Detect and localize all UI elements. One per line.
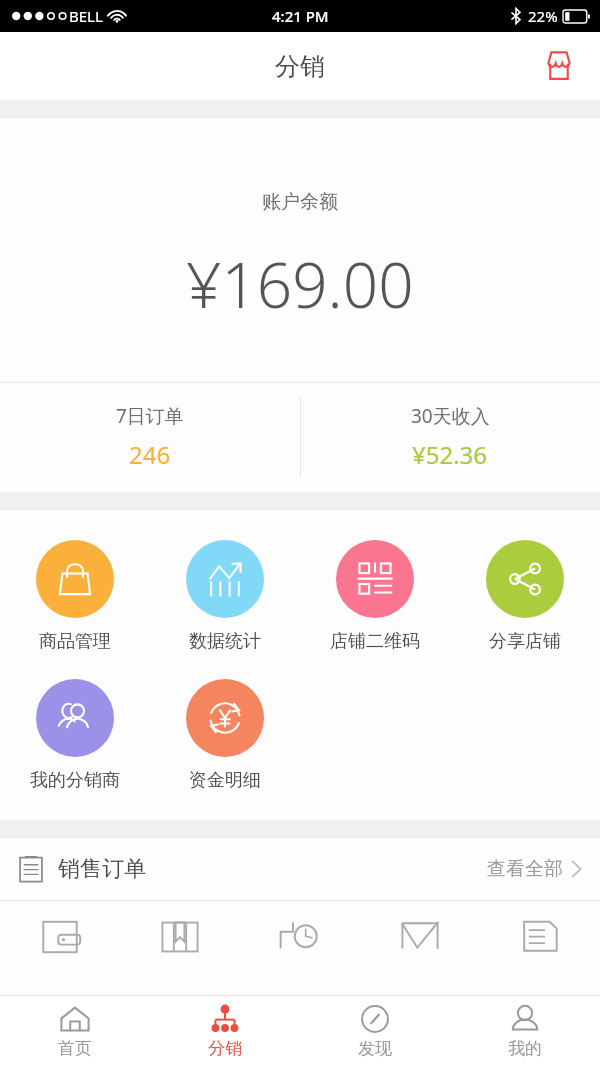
- staticText: 店铺二维码: [330, 630, 420, 653]
- staticText: 我的分销商: [30, 769, 120, 792]
- staticText: 30天收入: [411, 403, 490, 429]
- staticText: 销售订单: [58, 855, 146, 883]
- staticText: 首页: [58, 1038, 92, 1059]
- button[interactable]: 我的分销商: [0, 677, 150, 794]
- staticText: 4:21 PM: [272, 6, 329, 26]
- staticText: 查看全部: [487, 857, 563, 881]
- button[interactable]: 店铺二维码: [300, 538, 450, 655]
- button[interactable]: 资金明细: [150, 677, 300, 794]
- staticText: 22%: [528, 6, 558, 26]
- staticText: 资金明细: [189, 769, 261, 792]
- staticText: 246: [129, 438, 171, 471]
- button[interactable]: order status 3: [360, 918, 480, 956]
- button[interactable]: 数据统计: [150, 538, 300, 655]
- button[interactable]: 发现: [300, 996, 450, 1067]
- button[interactable]: 我的: [450, 996, 600, 1067]
- staticText: 分销: [208, 1038, 242, 1059]
- button[interactable]: 30天收入: [300, 382, 600, 492]
- staticText: BELL: [69, 6, 103, 26]
- staticText: 发现: [358, 1038, 392, 1059]
- staticText: 数据统计: [189, 630, 261, 653]
- button[interactable]: 分销: [150, 996, 300, 1067]
- staticText: 商品管理: [39, 630, 111, 653]
- button[interactable]: order status 1: [120, 918, 240, 956]
- staticText: 账户余额: [262, 190, 338, 214]
- staticText: 我的: [508, 1038, 542, 1059]
- staticText: ¥52.36: [412, 438, 488, 471]
- button[interactable]: 销售订单: [0, 838, 600, 900]
- button[interactable]: 首页: [0, 996, 150, 1067]
- button[interactable]: 7日订单: [0, 382, 300, 492]
- button[interactable]: 店铺: [536, 43, 582, 89]
- button[interactable]: order status 0: [0, 918, 120, 956]
- staticText: ¥169.00: [186, 242, 414, 326]
- button[interactable]: 分享店铺: [450, 538, 600, 655]
- button[interactable]: order status 4: [480, 918, 600, 956]
- staticText: 分销: [275, 51, 325, 82]
- staticText: 7日订单: [116, 403, 184, 429]
- staticText: 分享店铺: [489, 630, 561, 653]
- button[interactable]: 商品管理: [0, 538, 150, 655]
- button[interactable]: order status 2: [240, 918, 360, 956]
